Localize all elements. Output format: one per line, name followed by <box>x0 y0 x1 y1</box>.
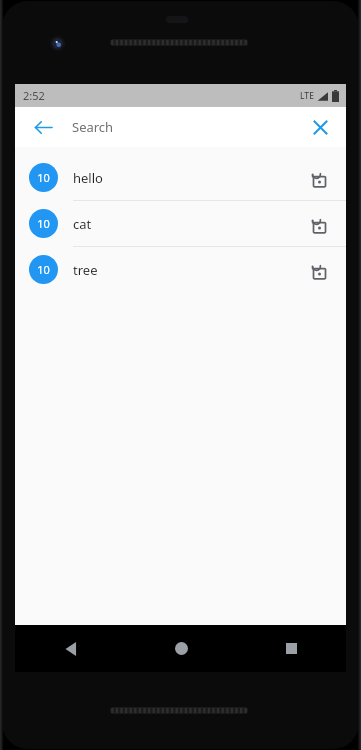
button[interactable]: Home <box>126 625 236 672</box>
button[interactable]: 10 <box>15 155 346 200</box>
staticText: hello <box>73 169 306 187</box>
button[interactable]: Unlocked <box>306 211 332 237</box>
button[interactable]: Unlocked <box>306 257 332 283</box>
button[interactable]: Back <box>15 625 126 672</box>
button[interactable]: 10 <box>15 247 346 292</box>
button[interactable]: Search <box>72 107 114 147</box>
button[interactable]: Recent apps <box>236 625 346 672</box>
staticText: tree <box>73 261 306 279</box>
staticText: 10 <box>37 170 50 185</box>
button[interactable]: Clear search <box>304 111 336 143</box>
staticText: 2:52 <box>23 88 45 103</box>
button[interactable]: 10 <box>15 201 346 246</box>
staticText: cat <box>73 215 306 233</box>
staticText: Search <box>72 118 114 136</box>
staticText: 10 <box>37 262 50 277</box>
button[interactable]: Unlocked <box>306 165 332 191</box>
staticText: 10 <box>37 216 50 231</box>
button[interactable]: Back <box>27 111 59 143</box>
staticText: LTE <box>300 90 314 102</box>
